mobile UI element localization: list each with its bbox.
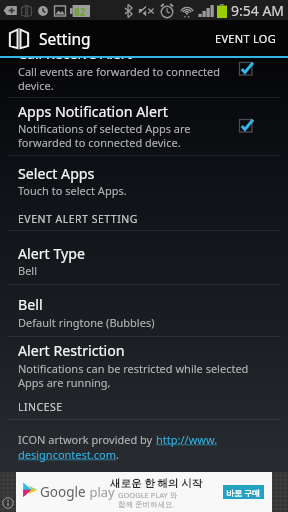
staticText: Setting bbox=[39, 28, 91, 49]
staticText: http://www. bbox=[156, 432, 218, 447]
staticText: Default ringtone (Bubbles) bbox=[18, 315, 155, 330]
staticText: EVENT ALERT SETTING bbox=[18, 212, 138, 226]
staticText: designcontest.com bbox=[18, 447, 116, 462]
button[interactable]: Setting bbox=[0, 20, 99, 56]
staticText: . bbox=[116, 447, 119, 462]
staticText: ICON artwork provided by bbox=[18, 432, 156, 447]
staticText: Google bbox=[40, 483, 86, 501]
staticText: 82 bbox=[74, 5, 86, 17]
staticText: Select Apps bbox=[18, 164, 95, 183]
staticText: Call events are forwarded to connected d… bbox=[18, 64, 221, 93]
button[interactable] bbox=[0, 285, 288, 336]
staticText: EVENT LOG bbox=[215, 31, 277, 46]
button[interactable] bbox=[0, 98, 288, 155]
button[interactable]: EVENT LOG bbox=[204, 20, 288, 56]
button[interactable] bbox=[0, 232, 288, 284]
staticText: Bell bbox=[18, 295, 43, 314]
staticText: Alert Type bbox=[18, 244, 85, 263]
staticText: Touch to select Apps. bbox=[18, 183, 127, 198]
button[interactable]: 바로 구매 bbox=[223, 485, 264, 499]
button[interactable] bbox=[0, 337, 288, 395]
button[interactable] bbox=[0, 58, 288, 97]
staticText: 9:54 AM bbox=[231, 1, 285, 20]
staticText: LINCESE bbox=[18, 400, 63, 414]
button[interactable] bbox=[0, 424, 288, 470]
staticText: Bell bbox=[18, 263, 38, 278]
staticText: Alert Restriction bbox=[18, 341, 125, 360]
staticText: Apps Notification Alert bbox=[18, 102, 168, 121]
staticText: Call Receive Alert bbox=[18, 58, 132, 63]
staticText: 바로 구매 bbox=[226, 487, 261, 498]
button[interactable] bbox=[0, 156, 288, 207]
button[interactable]: Ad information bbox=[2, 497, 14, 509]
staticText: GOOGLE PLAY 와 bbox=[118, 490, 178, 500]
button[interactable]: Google bbox=[16, 472, 272, 512]
staticText: 함께 준비하세요. bbox=[118, 499, 175, 509]
staticText: 새로운 한 해의 시작 bbox=[110, 476, 203, 490]
staticText: Notifications of selected Apps are forwa… bbox=[18, 121, 191, 150]
staticText: Notifications can be restricted while se… bbox=[18, 361, 249, 390]
staticText: play bbox=[86, 483, 115, 501]
